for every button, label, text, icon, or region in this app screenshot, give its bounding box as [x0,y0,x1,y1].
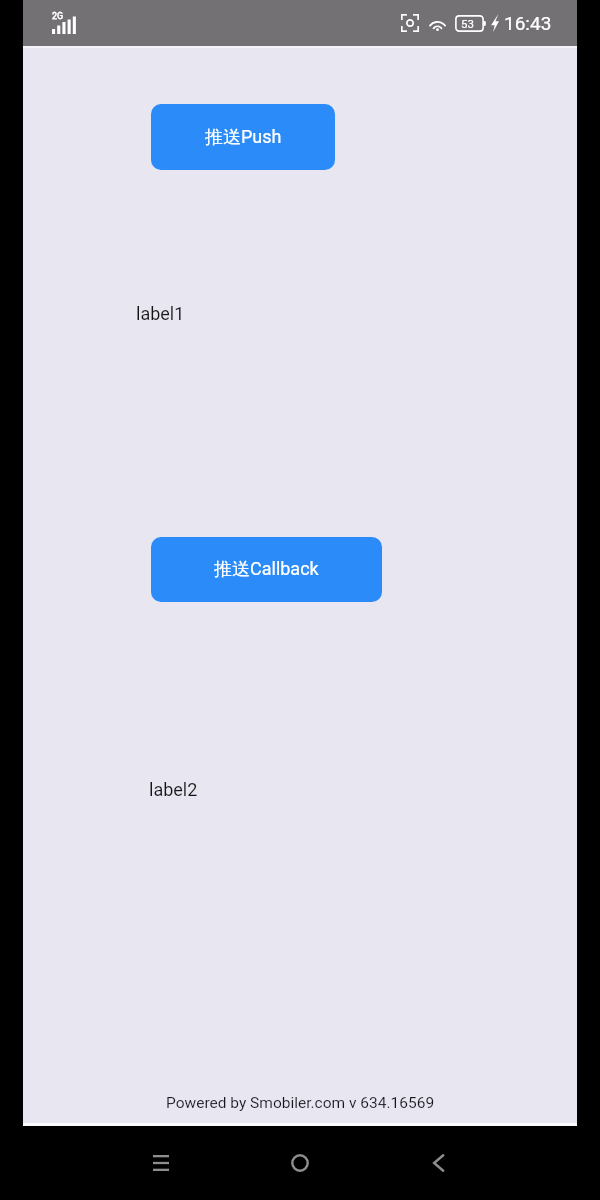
button[interactable]: 推送Callback [151,537,382,602]
button[interactable]: Back [409,1126,467,1200]
staticText: 推送Push [205,126,282,149]
staticText: label2 [149,779,198,800]
button[interactable]: 推送Push [151,104,335,170]
staticText: 推送Callback [214,558,319,581]
staticText: Powered by Smobiler.com v 634.16569 [166,1094,435,1112]
staticText: 16:43 [504,12,552,34]
button[interactable]: Recent apps [132,1126,190,1200]
staticText: label1 [136,303,185,324]
button[interactable]: Home [271,1126,329,1200]
staticText: 2G [52,11,64,22]
staticText: 53 [461,17,474,30]
